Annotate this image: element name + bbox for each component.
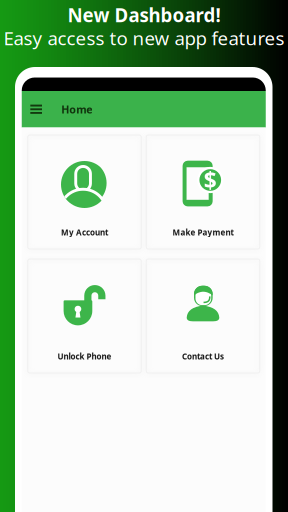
staticText: My Account <box>61 227 108 238</box>
staticText: New Dashboard! <box>67 3 220 27</box>
staticText: Easy access to new app features <box>3 26 284 50</box>
staticText: $ <box>204 165 217 195</box>
button[interactable]: Contact Us <box>146 259 260 373</box>
staticText: Unlock Phone <box>57 351 111 362</box>
staticText: Make Payment <box>172 227 233 238</box>
button[interactable]: My Account <box>28 135 141 249</box>
button[interactable]: Menu <box>23 91 49 127</box>
staticText: Contact Us <box>182 351 224 362</box>
staticText: Home <box>61 102 92 116</box>
button[interactable]: Unlock Phone <box>28 259 141 373</box>
button[interactable]: $ <box>146 135 260 249</box>
